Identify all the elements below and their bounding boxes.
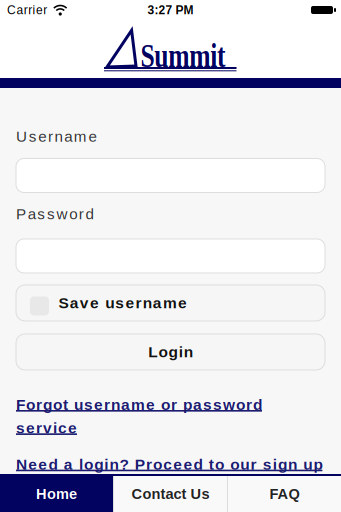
staticText: Contact Us bbox=[131, 486, 209, 502]
staticText: Need a login? Proceed to our sign up bbox=[16, 456, 322, 473]
staticText: service bbox=[16, 419, 77, 437]
staticText: Username bbox=[16, 128, 96, 145]
staticText: Summit bbox=[128, 37, 238, 74]
button[interactable]: Need a login? Proceed to our sign up bbox=[16, 456, 322, 473]
staticText: Password bbox=[16, 205, 93, 222]
staticText: Forgot username or password bbox=[16, 396, 262, 413]
staticText: Login bbox=[148, 343, 193, 361]
button[interactable]: Contact Us bbox=[114, 476, 227, 512]
button[interactable]: Save username bbox=[16, 285, 325, 321]
staticText: Carrier bbox=[7, 3, 47, 17]
button[interactable]: Forgot username or password bbox=[16, 396, 262, 437]
button[interactable]: Password bbox=[16, 239, 325, 273]
button[interactable]: Username bbox=[16, 158, 325, 192]
staticText: FAQ bbox=[269, 486, 299, 502]
button[interactable]: FAQ bbox=[228, 476, 341, 512]
staticText: Home bbox=[36, 486, 77, 502]
button[interactable]: Home bbox=[0, 476, 113, 512]
staticText: 3:27 PM bbox=[147, 3, 193, 17]
button[interactable]: Login bbox=[16, 334, 325, 370]
staticText: Save username bbox=[58, 294, 187, 312]
